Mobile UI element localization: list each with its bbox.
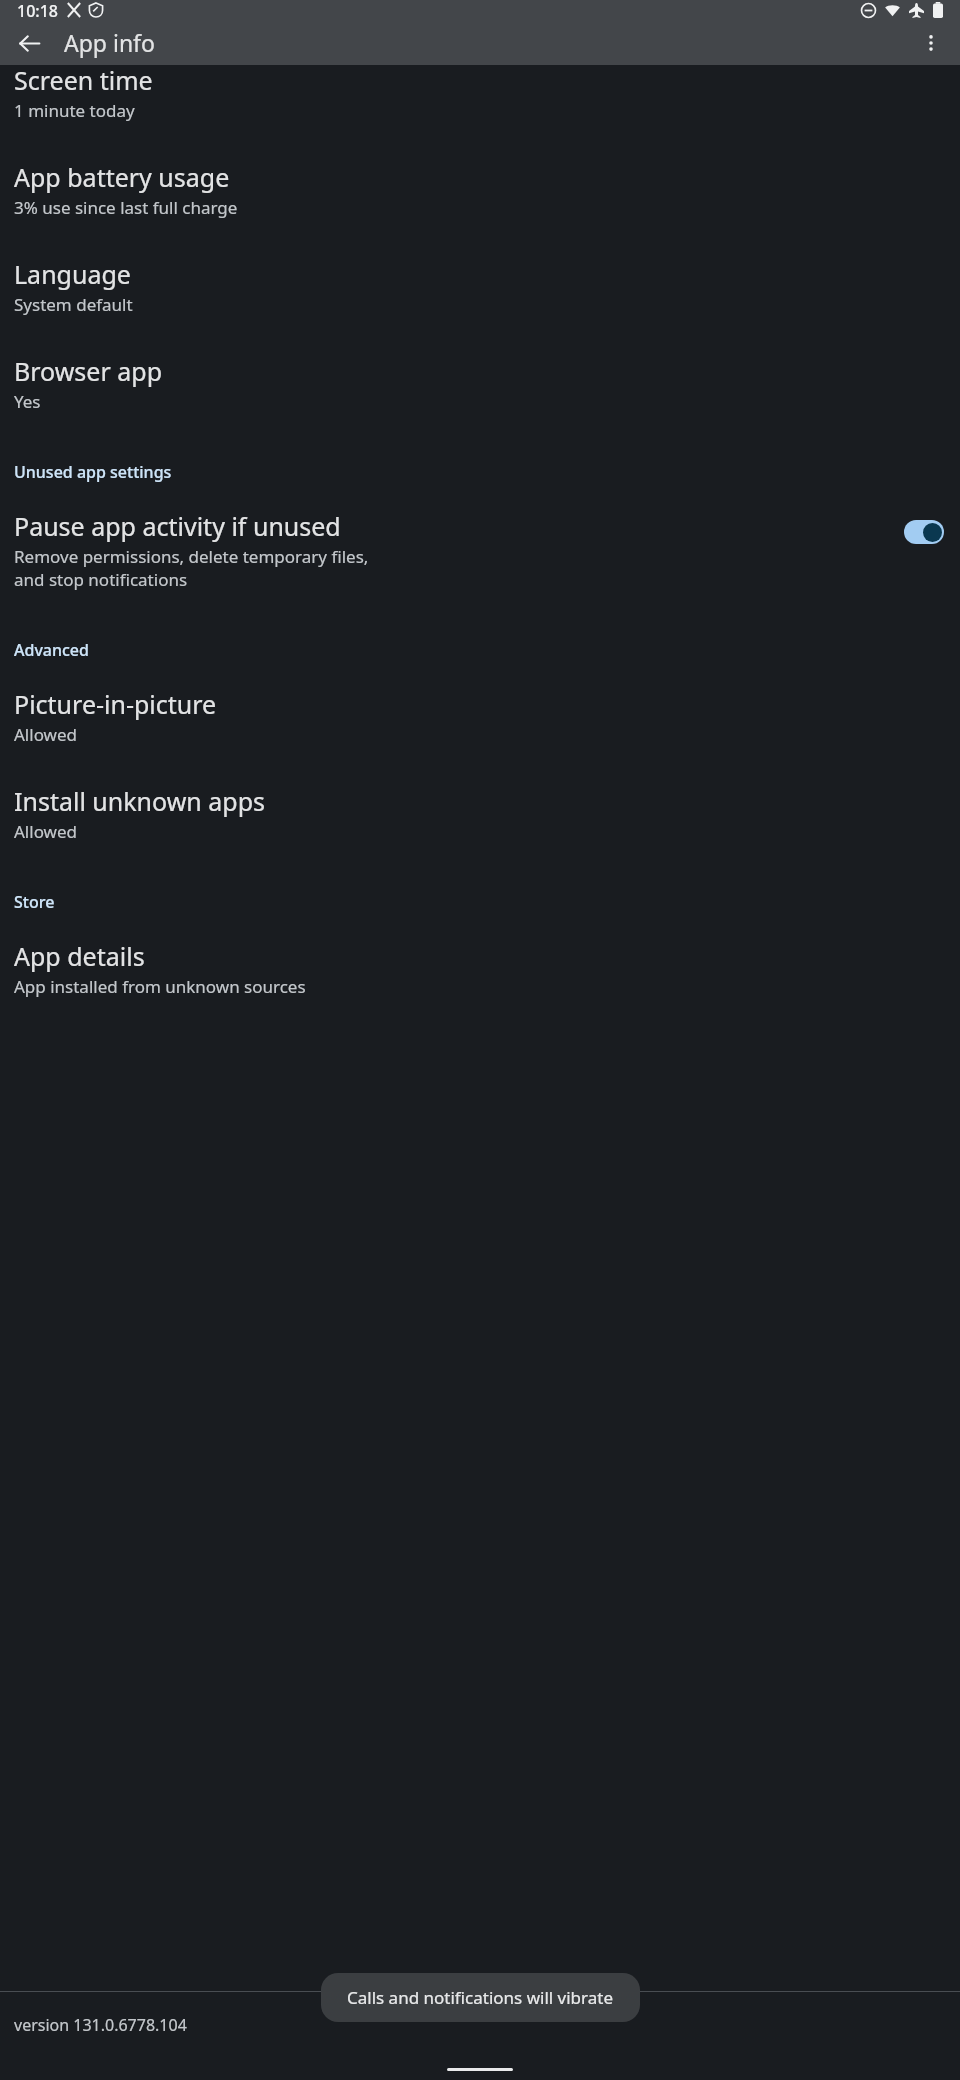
staticText: 1 minute today (14, 99, 135, 122)
staticText: Calls and notifications will vibrate (347, 1986, 614, 2009)
staticText: Unused app settings (14, 461, 172, 483)
button[interactable]: App battery usage (0, 141, 960, 238)
staticText: Store (14, 891, 55, 913)
staticText: Screen time (14, 63, 153, 97)
staticText: and stop notifications (14, 568, 188, 591)
button[interactable]: Back (7, 21, 51, 65)
staticText: Allowed (14, 723, 77, 746)
button[interactable]: Install unknown apps (0, 765, 960, 862)
button[interactable]: Calls and notifications will vibrate (321, 1973, 640, 2022)
staticText: version 131.0.6778.104 (14, 2014, 187, 2036)
staticText: 3% use since last full charge (14, 196, 238, 219)
staticText: Pause app activity if unused (14, 509, 341, 543)
staticText: Allowed (14, 820, 77, 843)
button[interactable]: Screen time (0, 44, 960, 141)
button[interactable]: App details (0, 920, 960, 1017)
button[interactable]: Pause app activity toggle (904, 520, 944, 544)
staticText: Remove permissions, delete temporary fil… (14, 545, 369, 568)
staticText: App info (64, 27, 155, 58)
staticText: Yes (14, 390, 41, 413)
button[interactable]: More options (909, 21, 953, 65)
staticText: Advanced (14, 639, 89, 661)
button[interactable]: Language (0, 238, 960, 335)
staticText: Install unknown apps (14, 784, 266, 818)
staticText: System default (14, 293, 133, 316)
staticText: Language (14, 257, 131, 291)
staticText: App battery usage (14, 160, 230, 194)
button[interactable]: Pause app activity if unused (0, 490, 960, 610)
button[interactable]: Browser app (0, 335, 960, 432)
staticText: App installed from unknown sources (14, 975, 306, 998)
staticText: Browser app (14, 354, 163, 388)
staticText: App details (14, 939, 145, 973)
staticText: Picture-in-picture (14, 687, 217, 721)
staticText: 10:18 (17, 0, 58, 20)
button[interactable]: Picture-in-picture (0, 668, 960, 765)
